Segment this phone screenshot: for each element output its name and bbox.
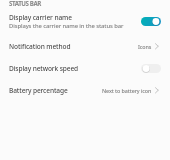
button[interactable]: Battery percentage: [0, 79, 170, 101]
staticText: Display carrier name: [9, 13, 72, 22]
button[interactable]: Off, toggle: [140, 62, 161, 74]
staticText: Notification method: [9, 42, 71, 51]
button[interactable]: Notification method: [0, 35, 170, 57]
staticText: Displays the carrier name in the status …: [9, 22, 124, 30]
staticText: Icons: [138, 43, 152, 50]
button[interactable]: Display network speed: [0, 57, 170, 79]
staticText: Next to battery icon: [102, 87, 152, 94]
button[interactable]: On, toggle: [140, 15, 161, 27]
staticText: STATUS BAR: [9, 0, 41, 7]
button[interactable]: Display carrier name: [0, 9, 170, 35]
staticText: Display network speed: [9, 64, 79, 73]
staticText: Battery percentage: [9, 86, 68, 95]
